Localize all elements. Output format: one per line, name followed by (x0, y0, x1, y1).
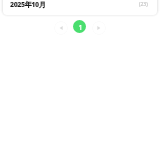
staticText: 2025年10月 (10, 0, 46, 10)
button[interactable]: Next page (92, 21, 106, 35)
staticText: 1 (78, 23, 83, 33)
button[interactable]: Previous page (54, 21, 68, 35)
staticText: (23) (139, 1, 148, 8)
button[interactable]: 1 (73, 20, 86, 33)
